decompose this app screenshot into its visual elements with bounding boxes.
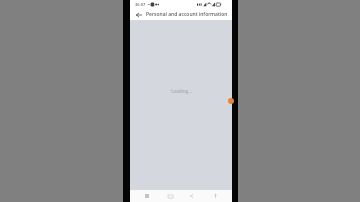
button[interactable]: Home <box>165 191 175 201</box>
button[interactable]: Recents <box>142 191 152 201</box>
staticText: 36:07 <box>135 2 146 7</box>
staticText: Personal and account information <box>146 11 228 18</box>
button[interactable]: Hide keyboard <box>210 191 220 201</box>
button[interactable]: Back <box>187 191 197 201</box>
button[interactable]: Scroll indicator <box>228 98 234 104</box>
staticText: Loading... <box>171 88 192 94</box>
button[interactable]: Back <box>134 10 143 19</box>
